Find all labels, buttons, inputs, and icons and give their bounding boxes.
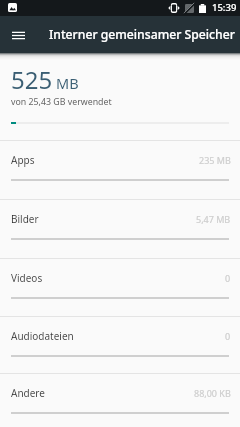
button[interactable]: Andere xyxy=(0,373,240,427)
staticText: 15:39 xyxy=(212,1,237,14)
staticText: Audiodateien xyxy=(11,329,74,343)
other: Screenshot captured xyxy=(8,3,17,12)
other: No SIM card xyxy=(185,4,194,13)
button[interactable]: Open navigation drawer xyxy=(0,17,36,53)
staticText: MB xyxy=(56,73,79,93)
other: Ringer vibrate xyxy=(168,3,180,13)
button[interactable]: Apps xyxy=(0,140,240,199)
staticText: Interner gemeinsamer Speicher xyxy=(49,26,235,43)
staticText: 5,47 MB xyxy=(196,213,231,225)
staticText: 0 xyxy=(225,272,231,284)
other: Battery full xyxy=(199,4,206,13)
staticText: Bilder xyxy=(11,212,39,226)
staticText: 0 xyxy=(225,330,231,342)
staticText: 525 xyxy=(11,63,53,96)
button[interactable]: Videos xyxy=(0,258,240,316)
staticText: Andere xyxy=(11,386,45,400)
staticText: 235 MB xyxy=(199,154,231,166)
button[interactable]: Audiodateien xyxy=(0,316,240,373)
staticText: 88,00 KB xyxy=(194,387,231,399)
staticText: Videos xyxy=(11,271,43,285)
staticText: von 25,43 GB verwendet xyxy=(11,96,112,108)
button[interactable]: Bilder xyxy=(0,199,240,258)
staticText: Apps xyxy=(11,153,35,167)
